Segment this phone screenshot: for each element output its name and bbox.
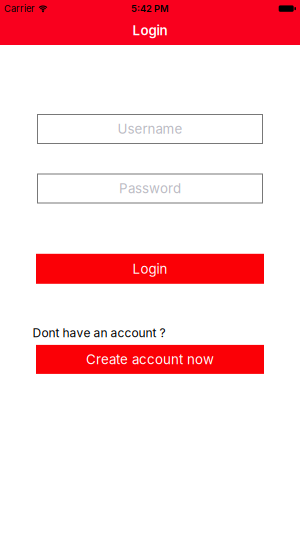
- staticText: Password: [119, 181, 181, 196]
- staticText: Username: [117, 121, 182, 137]
- button[interactable]: Create account now: [36, 345, 264, 374]
- staticText: Login: [132, 22, 167, 38]
- staticText: Dont have an account ?: [32, 326, 165, 340]
- button[interactable]: Login: [36, 254, 264, 284]
- button[interactable]: Username: [37, 114, 263, 144]
- staticText: Login: [132, 261, 167, 277]
- button[interactable]: Password: [37, 173, 263, 203]
- staticText: Carrier: [4, 3, 35, 14]
- staticText: 5:42 PM: [131, 3, 169, 14]
- staticText: Create account now: [86, 351, 214, 367]
